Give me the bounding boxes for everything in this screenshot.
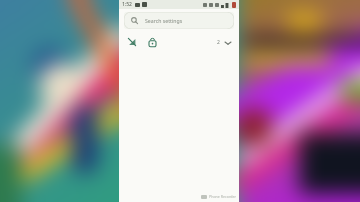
button[interactable]: Secure bbox=[145, 35, 159, 49]
button[interactable]: Search bbox=[124, 12, 234, 29]
button[interactable]: 2 bbox=[215, 37, 233, 48]
other: Expand bbox=[225, 41, 231, 45]
staticText: Search settings bbox=[145, 17, 183, 24]
staticText: Phone Recorder bbox=[209, 194, 237, 199]
staticText: 2 bbox=[217, 39, 220, 46]
button[interactable]: Signal off bbox=[125, 35, 139, 49]
other: Search bbox=[131, 17, 138, 24]
staticText: 1:52 bbox=[122, 1, 132, 8]
